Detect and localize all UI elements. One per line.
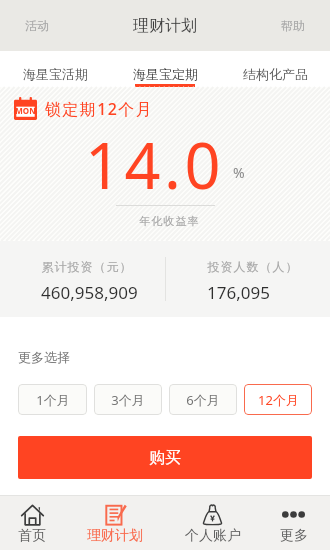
staticText: 1个月 <box>36 391 70 409</box>
other: Lock period <box>14 97 37 120</box>
staticText: 14.0 <box>85 122 224 208</box>
button[interactable]: 结构化产品 <box>220 51 330 87</box>
staticText: 个人账户 <box>185 527 241 545</box>
button[interactable]: Account <box>168 495 257 550</box>
staticText: 活动 <box>25 18 49 33</box>
button[interactable]: Home <box>0 495 64 550</box>
staticText: 年化收益率 <box>139 214 199 228</box>
staticText: % <box>233 163 245 182</box>
staticText: 12个月 <box>258 391 299 409</box>
staticText: 投资人数（人） <box>207 259 298 274</box>
staticText: 海星宝活期 <box>23 66 88 82</box>
staticText: 锁定期12个月 <box>45 98 154 120</box>
staticText: 购买 <box>149 448 181 468</box>
staticText: 海星宝定期 <box>133 66 198 82</box>
other: Plans <box>104 503 127 526</box>
staticText: MON <box>15 105 36 116</box>
button[interactable]: 海星宝活期 <box>0 51 110 87</box>
staticText: 更多选择 <box>18 349 70 365</box>
button[interactable]: 活动 <box>0 0 74 51</box>
button[interactable]: 1个月 <box>18 384 87 415</box>
button[interactable]: 帮助 <box>256 0 330 51</box>
staticText: 结构化产品 <box>243 66 308 82</box>
other: Home <box>21 503 44 526</box>
staticText: 首页 <box>18 527 46 545</box>
button[interactable]: 6个月 <box>169 384 237 415</box>
staticText: 更多 <box>280 527 308 545</box>
staticText: 460,958,909 <box>41 281 138 304</box>
button[interactable]: 12个月 <box>244 384 312 415</box>
button[interactable]: 购买 <box>18 436 312 479</box>
staticText: 帮助 <box>281 18 305 33</box>
staticText: 6个月 <box>186 391 220 409</box>
staticText: 3个月 <box>111 391 145 409</box>
button[interactable]: 海星宝定期 <box>110 51 220 87</box>
other: More <box>282 503 305 526</box>
staticText: 理财计划 <box>133 16 197 36</box>
button[interactable]: Plans <box>71 495 159 550</box>
other: Account <box>201 503 224 526</box>
staticText: 累计投资（元） <box>41 259 132 274</box>
staticText: 理财计划 <box>87 527 143 545</box>
button[interactable]: 3个月 <box>94 384 162 415</box>
button[interactable]: More <box>257 495 330 550</box>
staticText: 176,095 <box>207 281 270 304</box>
